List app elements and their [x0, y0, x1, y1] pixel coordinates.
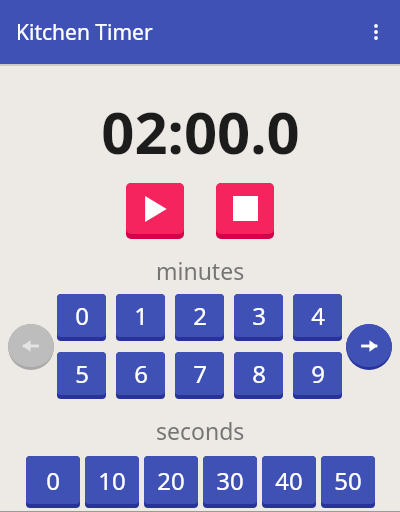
- button[interactable]: 20: [144, 456, 198, 508]
- staticText: 6: [134, 357, 148, 390]
- button[interactable]: 0: [57, 294, 106, 341]
- staticText: 10: [98, 464, 126, 497]
- button[interactable]: More options: [352, 8, 400, 56]
- staticText: 1: [134, 299, 148, 332]
- staticText: seconds: [156, 415, 245, 446]
- button[interactable]: Start timer: [126, 183, 184, 239]
- staticText: 7: [193, 357, 207, 390]
- button[interactable]: Previous: [8, 324, 54, 370]
- button[interactable]: Stop timer: [216, 183, 274, 239]
- staticText: 30: [216, 464, 244, 497]
- staticText: 40: [275, 464, 303, 497]
- button[interactable]: 6: [116, 352, 165, 399]
- button[interactable]: 9: [293, 352, 342, 399]
- staticText: 9: [311, 357, 325, 390]
- staticText: 20: [157, 464, 185, 497]
- staticText: 8: [252, 357, 266, 390]
- staticText: 0: [75, 299, 89, 332]
- button[interactable]: 8: [234, 352, 283, 399]
- button[interactable]: 40: [262, 456, 316, 508]
- button[interactable]: 5: [57, 352, 106, 399]
- staticText: Kitchen Timer: [16, 18, 153, 47]
- staticText: 2: [193, 299, 207, 332]
- button[interactable]: 10: [85, 456, 139, 508]
- button[interactable]: 0: [26, 456, 80, 508]
- button[interactable]: 3: [234, 294, 283, 341]
- button[interactable]: 30: [203, 456, 257, 508]
- button[interactable]: Next: [346, 324, 392, 370]
- staticText: 5: [75, 357, 89, 390]
- button[interactable]: 7: [175, 352, 224, 399]
- staticText: 50: [334, 464, 362, 497]
- staticText: 3: [252, 299, 266, 332]
- button[interactable]: 1: [116, 294, 165, 341]
- staticText: 02:00.0: [101, 92, 300, 171]
- staticText: 0: [46, 464, 60, 497]
- button[interactable]: 2: [175, 294, 224, 341]
- button[interactable]: 4: [293, 294, 342, 341]
- button[interactable]: 50: [321, 456, 375, 508]
- staticText: 4: [311, 299, 325, 332]
- staticText: minutes: [156, 255, 245, 286]
